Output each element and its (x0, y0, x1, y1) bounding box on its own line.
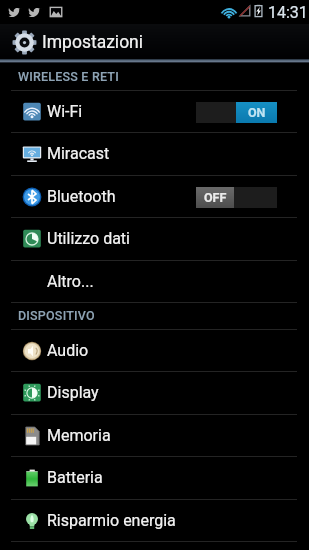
staticText: OFF (204, 190, 227, 205)
button[interactable]: On (196, 102, 277, 123)
staticText: Display (47, 383, 99, 402)
staticText: Miracast (47, 144, 110, 163)
staticText: Risparmio energia (47, 511, 176, 530)
staticText: ON (248, 105, 266, 120)
button[interactable]: Miracast (0, 133, 309, 175)
staticText: Batteria (47, 468, 103, 487)
button[interactable]: Utilizzo dati (0, 218, 309, 260)
staticText: Altro... (47, 272, 94, 291)
button[interactable]: Display (0, 372, 309, 414)
staticText: DISPOSITIVO (18, 308, 95, 323)
button[interactable]: Audio (0, 330, 309, 372)
button[interactable]: Bluetooth (0, 176, 309, 218)
staticText: Bluetooth (47, 187, 116, 206)
staticText: WIRELESS E RETI (18, 69, 119, 84)
staticText: Utilizzo dati (47, 229, 130, 248)
button[interactable]: Altro... (0, 261, 309, 303)
button[interactable]: Off (196, 187, 277, 208)
staticText: Impostazioni (42, 32, 144, 53)
button[interactable]: Memoria (0, 415, 309, 457)
staticText: Audio (47, 341, 89, 360)
button[interactable]: Batteria (0, 457, 309, 499)
staticText: Memoria (47, 426, 111, 445)
button[interactable]: Wi-Fi (0, 91, 309, 133)
staticText: 14:31 (268, 3, 308, 22)
staticText: Wi-Fi (47, 102, 83, 121)
button[interactable]: Risparmio energia (0, 500, 309, 542)
